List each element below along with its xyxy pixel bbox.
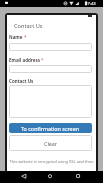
button[interactable]: Clear [9,135,92,151]
button[interactable]: To confirmation screen [9,123,92,133]
staticText: Email address [9,57,40,63]
staticText: Contact Us [9,78,34,84]
button[interactable]: Recents [66,171,90,183]
staticText: 17:43 [85,1,96,7]
button[interactable]: Home [38,171,62,183]
button[interactable]: Back [12,171,36,183]
staticText: Clear [44,140,58,147]
button[interactable] [9,65,92,73]
staticText: Contact Us [14,22,43,30]
button[interactable] [9,43,92,51]
button[interactable] [9,85,92,118]
staticText: * [41,57,44,63]
staticText: * [24,34,27,40]
staticText: Name [9,34,23,40]
staticText: To confirmation screen [21,125,80,132]
staticText: This website is encrypted using SSL and … [7,159,96,164]
